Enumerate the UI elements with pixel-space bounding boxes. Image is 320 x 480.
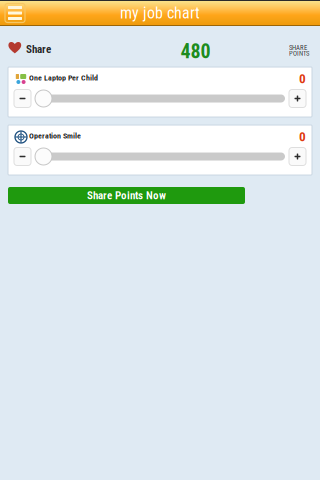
button[interactable]: Share Points Now (8, 187, 245, 204)
staticText: 0 (299, 71, 306, 87)
button[interactable]: Decrease points (14, 147, 31, 165)
staticText: Share Points Now (87, 189, 166, 202)
staticText: POINTS (289, 50, 309, 57)
button[interactable]: Increase points (289, 89, 306, 107)
staticText: 480 (180, 40, 210, 63)
staticText: SHARE (289, 44, 307, 52)
staticText: Share (26, 43, 51, 56)
button[interactable]: Menu (0, 0, 28, 25)
button[interactable]: Decrease points (14, 89, 31, 107)
staticText: 0 (299, 129, 306, 145)
staticText: One Laptop Per Child (29, 73, 98, 82)
button[interactable]: Increase points (289, 147, 306, 165)
staticText: Operation Smile (29, 131, 81, 140)
staticText: my job chart (120, 4, 200, 22)
